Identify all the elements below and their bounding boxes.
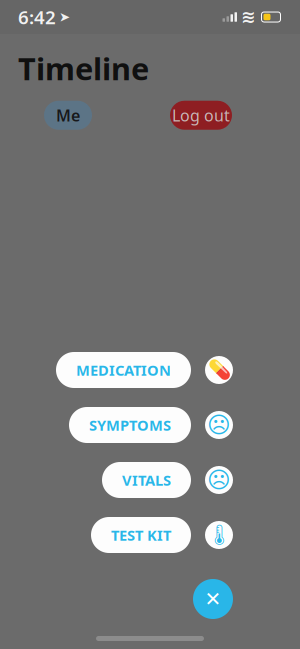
staticText: SYMPTOMS [89,415,171,435]
button[interactable]: Close menu [193,579,233,619]
staticText: TEST KIT [111,525,171,545]
staticText: ☹ [207,467,231,493]
staticText: VITALS [122,470,171,490]
button[interactable]: TEST KIT [91,517,191,553]
button[interactable]: SYMPTOMS [205,411,233,439]
staticText: 💊 [207,359,230,381]
staticText: Timeline [18,48,149,89]
button[interactable]: VITALS [205,466,233,494]
button[interactable]: TEST KIT [205,521,233,549]
staticText: 6:42 [18,5,56,29]
button[interactable]: SYMPTOMS [69,407,191,443]
staticText: Me [56,105,80,126]
button[interactable]: Me [44,101,92,130]
staticText: ✕ [204,588,221,610]
staticText: MEDICATION [76,360,171,380]
button[interactable]: VITALS [102,462,191,498]
button[interactable]: MEDICATION [56,352,191,388]
staticText: ☹ [207,412,231,438]
staticText: ≋ [241,7,256,27]
staticText: 🌡 [206,524,231,546]
staticText: Log out [172,105,230,126]
staticText: ➤ [59,9,70,24]
button[interactable]: MEDICATION [205,356,233,384]
button[interactable]: Log out [170,101,232,130]
